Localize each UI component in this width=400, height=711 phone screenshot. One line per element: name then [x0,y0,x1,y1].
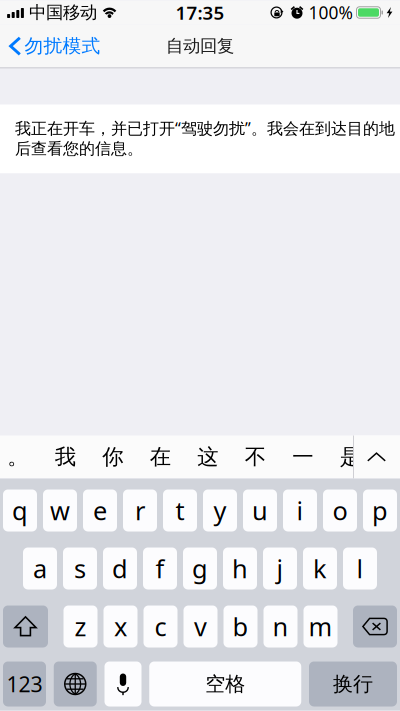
staticText: 你 [102,444,123,470]
staticText: r [135,494,145,527]
staticText: 不 [245,444,266,470]
button[interactable]: m [303,605,337,647]
button[interactable]: 在 [136,435,184,478]
button[interactable]: b [223,605,257,647]
staticText: i [296,494,303,527]
staticText: d [112,552,128,585]
button[interactable]: v [183,605,217,647]
button[interactable]: s [63,547,97,589]
button[interactable]: i [283,489,317,531]
button[interactable]: 我 [41,435,89,478]
staticText: n [272,610,288,643]
button[interactable]: p [363,489,397,531]
staticText: f [155,552,164,585]
button[interactable]: e [83,489,117,531]
staticText: a [33,552,47,585]
staticText: b [232,610,248,643]
staticText: 勿扰模式 [24,34,100,57]
staticText: l [356,552,363,585]
button[interactable]: u [243,489,277,531]
staticText: m [308,610,332,643]
button[interactable]: 不 [231,435,279,478]
staticText: t [175,494,184,527]
button[interactable]: g [183,547,217,589]
button[interactable]: n [263,605,297,647]
button[interactable]: l [343,547,377,589]
button[interactable]: 空格 [149,661,301,706]
staticText: v [194,610,207,643]
staticText: 是 [340,444,361,470]
staticText: u [252,494,268,527]
staticText: q [12,494,28,527]
button[interactable]: c [143,605,177,647]
staticText: j [276,552,283,585]
button[interactable]: 123 [3,661,46,706]
staticText: 中国移动 [29,2,97,23]
staticText: y [213,494,226,527]
staticText: 一 [292,444,313,470]
button[interactable]: f [143,547,177,589]
button[interactable]: Expand candidates [353,435,400,478]
staticText: 。 [7,444,28,470]
button[interactable]: q [3,489,37,531]
staticText: g [192,552,208,585]
button[interactable]: 勿扰模式 [0,28,100,63]
staticText: 我正在开车，并已打开“驾驶勿扰”。我会在到达目的地后查看您的信息。 [15,117,395,158]
staticText: 我 [55,444,76,470]
button[interactable]: z [63,605,97,647]
button[interactable]: d [103,547,137,589]
button[interactable]: 这 [184,435,231,478]
button[interactable]: o [323,489,357,531]
button[interactable]: k [303,547,337,589]
button[interactable]: 换行 [309,661,397,706]
staticText: 这 [197,444,218,470]
staticText: c [154,610,166,643]
button[interactable]: Delete [353,605,397,647]
staticText: 100% [308,1,352,24]
staticText: e [93,494,107,527]
staticText: o [332,494,347,527]
button[interactable]: Shift [3,605,48,647]
button[interactable]: Dictation [104,661,141,706]
button[interactable]: r [123,489,157,531]
staticText: x [114,610,127,643]
button[interactable]: Switch keyboard [54,661,97,706]
button[interactable]: j [263,547,297,589]
staticText: s [74,552,86,585]
staticText: 在 [150,444,171,470]
button[interactable]: 一 [279,435,326,478]
staticText: w [50,494,70,527]
staticText: 123 [6,670,42,698]
button[interactable]: w [43,489,77,531]
staticText: 空格 [205,672,245,696]
staticText: 17:35 [175,0,224,25]
button[interactable]: 。 [0,435,41,478]
button[interactable]: a [23,547,57,589]
staticText: p [372,494,388,527]
staticText: h [232,552,248,585]
button[interactable]: h [223,547,257,589]
button[interactable]: x [103,605,137,647]
staticText: 换行 [333,672,373,696]
staticText: k [313,552,327,585]
staticText: z [74,610,86,643]
button[interactable]: y [203,489,237,531]
button[interactable]: 是 [326,435,374,478]
button[interactable]: t [163,489,197,531]
staticText: 自动回复 [166,35,234,57]
button[interactable]: 你 [89,435,136,478]
